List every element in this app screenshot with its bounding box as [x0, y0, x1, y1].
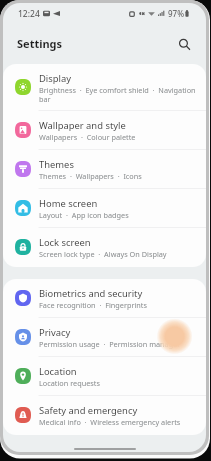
- button[interactable]: Safety and emergency: [3, 396, 206, 435]
- staticText: Lock screen: [39, 236, 91, 249]
- staticText: Home screen: [39, 197, 98, 210]
- button[interactable]: Privacy: [3, 318, 206, 357]
- staticText: Wallpapers · Colour palette: [39, 132, 136, 142]
- staticText: Themes · Wallpapers · Icons: [39, 171, 142, 181]
- button[interactable]: Home screen: [3, 189, 206, 228]
- button[interactable]: Biometrics and security: [3, 279, 206, 318]
- button[interactable]: Search: [172, 32, 196, 56]
- button[interactable]: Location: [3, 357, 206, 396]
- button[interactable]: Wallpaper and style: [3, 111, 206, 150]
- staticText: Safety and emergency: [39, 404, 138, 417]
- button[interactable]: Themes: [3, 150, 206, 189]
- staticText: 97%: [168, 8, 184, 19]
- staticText: Privacy: [39, 326, 71, 339]
- staticText: Screen lock type · Always On Display: [39, 249, 167, 259]
- button[interactable]: Lock screen: [3, 228, 206, 267]
- staticText: Location: [39, 365, 77, 378]
- staticText: Medical info · Wireless emergency alerts: [39, 417, 181, 427]
- staticText: Face recognition · Fingerprints: [39, 300, 147, 310]
- staticText: Layout · App icon badges: [39, 210, 129, 220]
- staticText: Themes: [39, 158, 74, 171]
- staticText: Settings: [17, 36, 63, 51]
- staticText: Brightness · Eye comfort shield · Naviga…: [39, 85, 201, 104]
- button[interactable]: Display: [3, 64, 206, 111]
- staticText: Location requests: [39, 378, 100, 388]
- staticText: 12:24: [18, 8, 40, 20]
- staticText: Wallpaper and style: [39, 119, 126, 132]
- staticText: Display: [39, 72, 72, 85]
- staticText: Biometrics and security: [39, 287, 143, 300]
- staticText: Permission usage · Permission manager: [39, 339, 181, 349]
